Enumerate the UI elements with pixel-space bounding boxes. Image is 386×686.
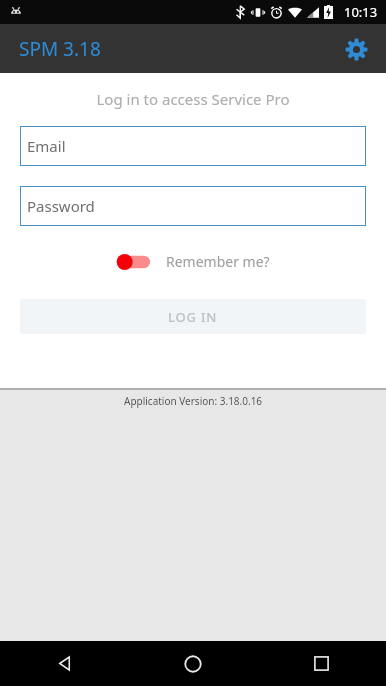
button[interactable]: Email <box>20 126 366 166</box>
button[interactable]: Password <box>20 186 366 226</box>
button[interactable]: LOG IN <box>20 299 366 334</box>
button[interactable]: Recent apps <box>257 641 386 686</box>
button[interactable]: Remember me? <box>112 248 274 275</box>
staticText: Password <box>27 196 95 216</box>
staticText: LOG IN <box>168 308 218 326</box>
button[interactable]: Home <box>128 641 257 686</box>
staticText: Remember me? <box>166 252 270 271</box>
button[interactable]: Back <box>0 641 128 686</box>
staticText: Log in to access Service Pro <box>0 89 386 109</box>
button[interactable]: Settings <box>336 29 376 69</box>
staticText: 10:13 <box>344 3 378 21</box>
staticText: SPM 3.18 <box>19 36 101 62</box>
staticText: Email <box>27 136 66 156</box>
staticText: Application Version: 3.18.0.16 <box>124 394 263 408</box>
